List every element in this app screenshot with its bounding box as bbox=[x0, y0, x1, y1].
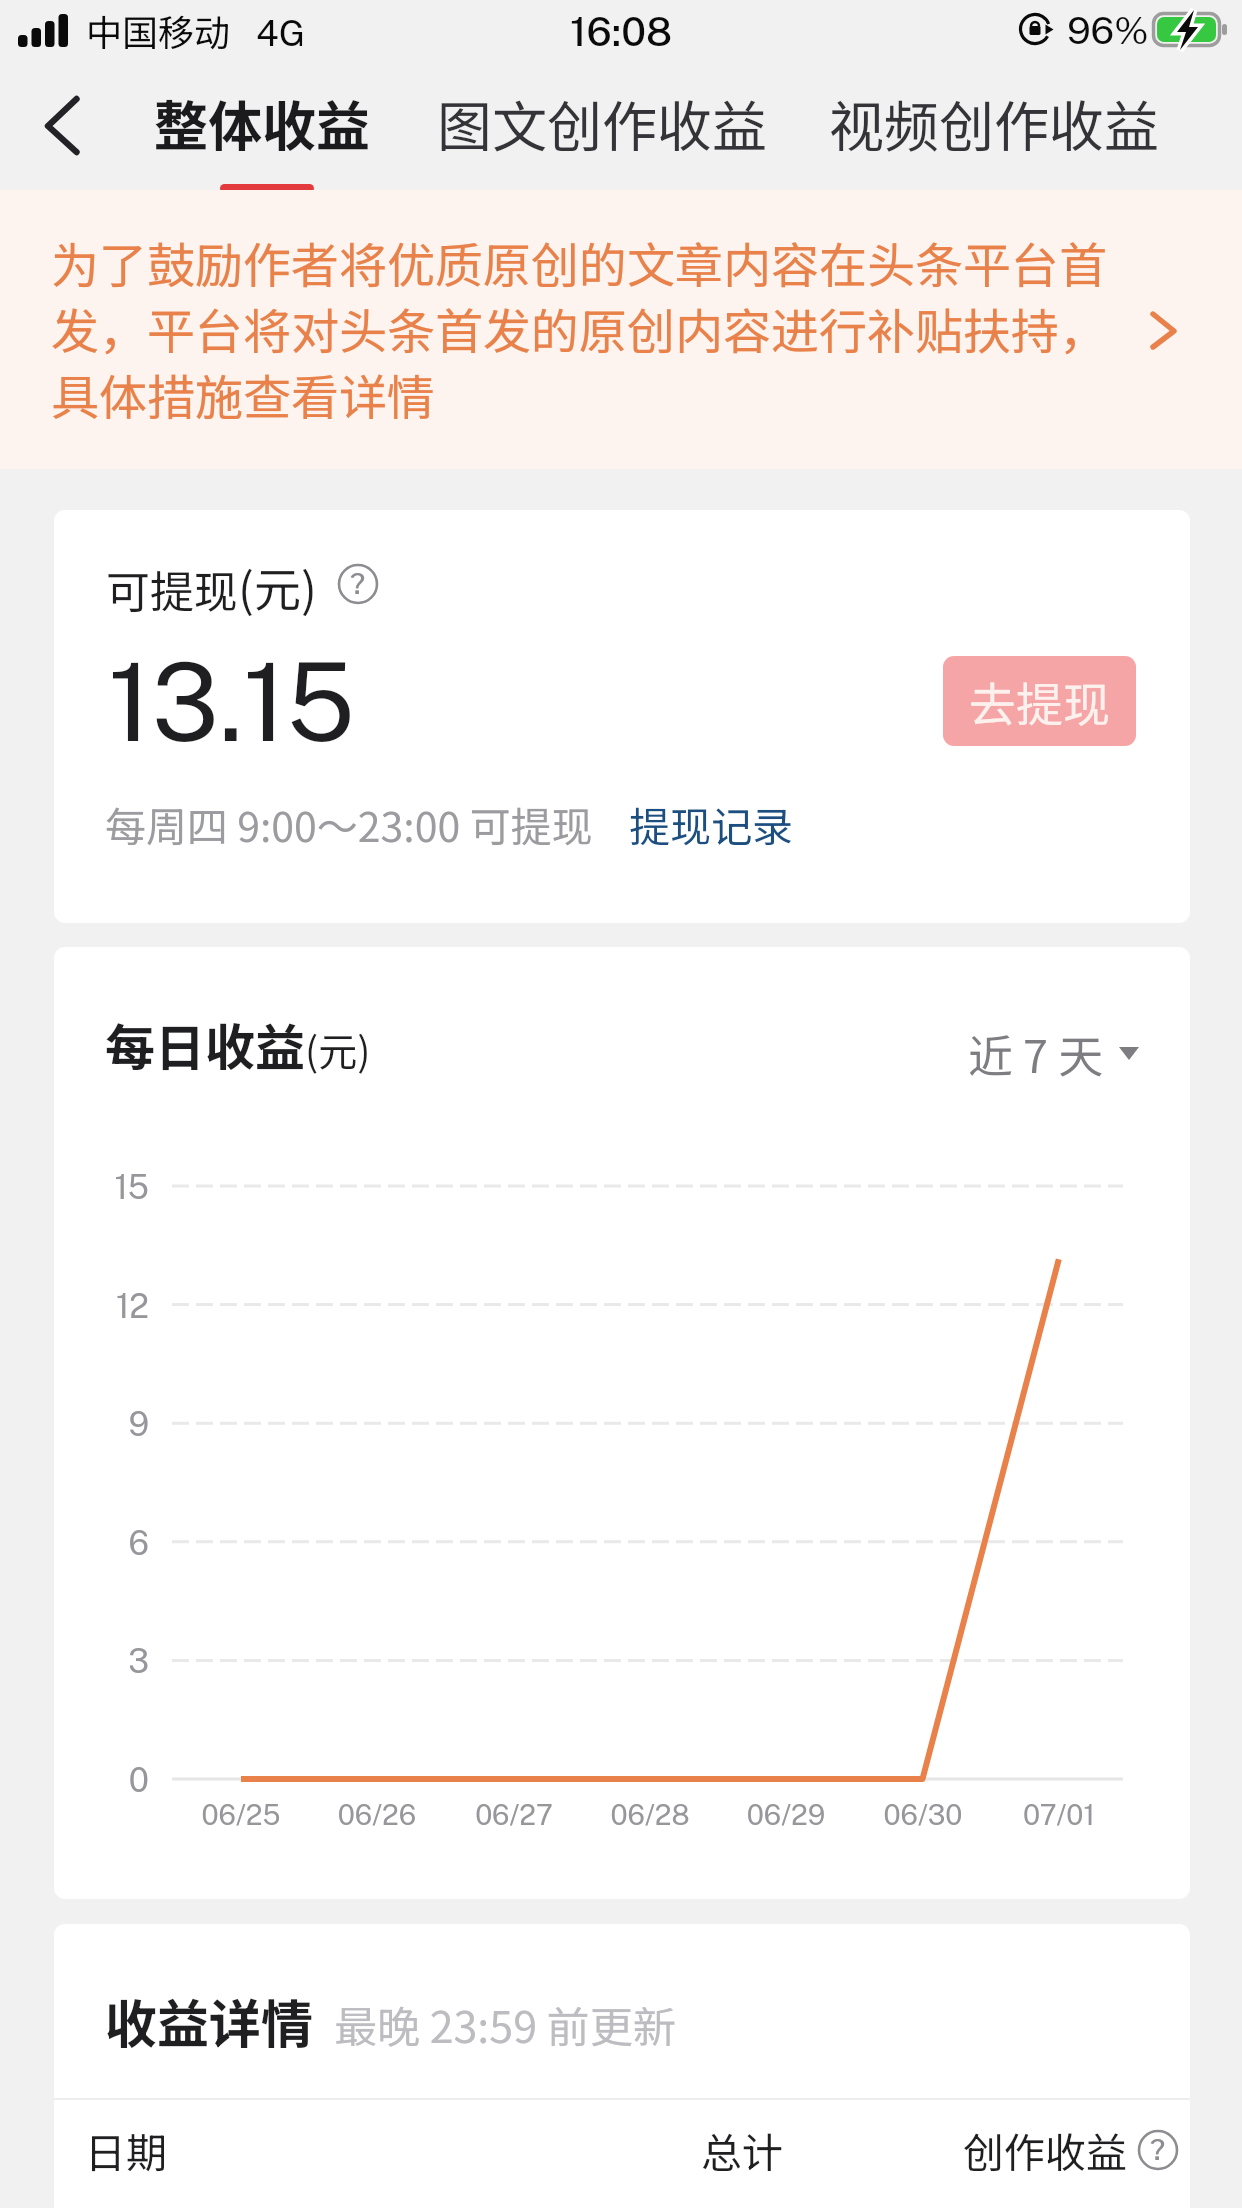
staticText: 06/29 bbox=[716, 1798, 856, 1831]
staticText: (元) bbox=[305, 1021, 371, 1077]
button[interactable]: 近 7 天 bbox=[968, 1021, 1139, 1086]
staticText: 12 bbox=[54, 1287, 149, 1326]
staticText: 最晚 23:59 前更新 bbox=[334, 1993, 676, 2055]
button[interactable]: Back bbox=[18, 78, 108, 182]
staticText: 4G bbox=[256, 12, 306, 54]
button[interactable]: 图文创作收益 bbox=[437, 70, 768, 181]
staticText: 日期 bbox=[85, 2120, 167, 2179]
staticText: 为了鼓励作者将优质原创的文章内容在头条平台首发，平台将对头条首发的原创内容进行补… bbox=[51, 227, 1123, 429]
staticText: 总计 bbox=[701, 2120, 783, 2179]
staticText: 图文创作收益 bbox=[437, 83, 768, 163]
staticText: 16:08 bbox=[570, 8, 673, 55]
staticText: 15 bbox=[54, 1168, 149, 1207]
staticText: ? bbox=[350, 566, 366, 600]
button[interactable]: 整体收益 bbox=[154, 70, 370, 179]
staticText: 收益详情 bbox=[105, 1983, 314, 2058]
staticText: 07/01 bbox=[989, 1798, 1129, 1831]
staticText: 中国移动 bbox=[86, 4, 231, 56]
staticText: 06/30 bbox=[853, 1798, 993, 1831]
button[interactable]: 视频创作收益 bbox=[829, 70, 1160, 181]
staticText: 06/28 bbox=[580, 1798, 720, 1831]
staticText: (元) bbox=[238, 552, 317, 620]
staticText: 提现记录 bbox=[629, 794, 793, 853]
staticText: 创作收益 bbox=[963, 2120, 1127, 2179]
staticText: 06/27 bbox=[444, 1798, 584, 1831]
staticText: 6 bbox=[54, 1524, 149, 1563]
staticText: 3 bbox=[54, 1642, 149, 1681]
staticText: 近 7 天 bbox=[968, 1021, 1104, 1086]
button[interactable]: 提现记录 bbox=[593, 794, 793, 853]
staticText: 9 bbox=[54, 1405, 149, 1444]
button[interactable]: 为了鼓励作者将优质原创的文章内容在头条平台首发，平台将对头条首发的原创内容进行补… bbox=[0, 190, 1242, 469]
staticText: 去提现 bbox=[969, 667, 1110, 735]
staticText: 06/26 bbox=[307, 1798, 447, 1831]
staticText: 整体收益 bbox=[154, 83, 370, 161]
staticText: 96% bbox=[1067, 8, 1149, 53]
staticText: 06/25 bbox=[171, 1798, 311, 1831]
staticText: 视频创作收益 bbox=[829, 83, 1160, 163]
staticText: 每周四 9:00～23:00 可提现 bbox=[105, 794, 593, 853]
staticText: ? bbox=[1150, 2132, 1166, 2166]
button[interactable]: 去提现 bbox=[943, 656, 1136, 746]
staticText: 0 bbox=[54, 1761, 149, 1800]
staticText: 可提现 bbox=[106, 557, 238, 621]
staticText: 每日收益 bbox=[105, 1008, 305, 1080]
staticText: 13.15 bbox=[108, 639, 356, 765]
